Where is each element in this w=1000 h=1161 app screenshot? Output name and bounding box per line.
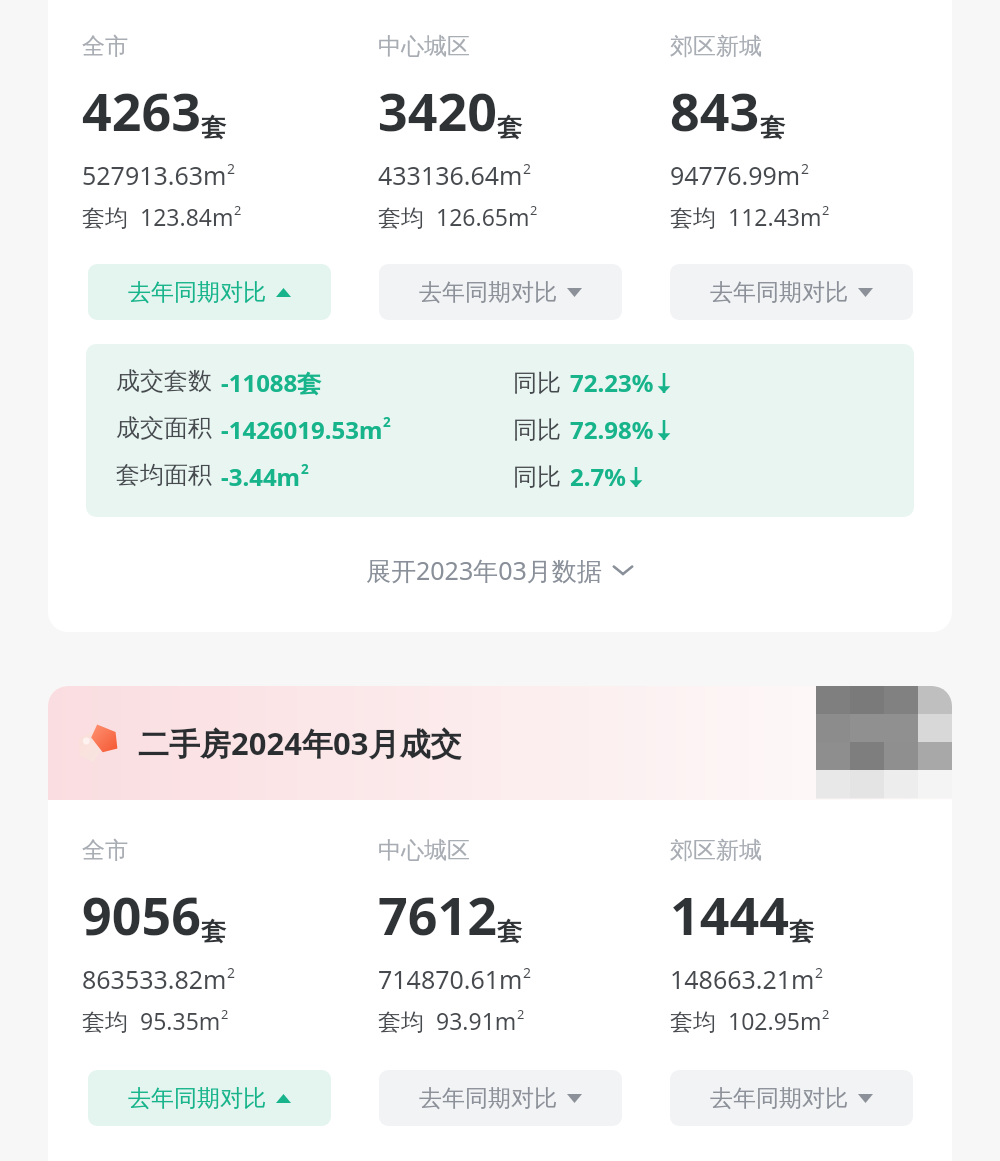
staticText: 去年同期对比 <box>128 278 266 307</box>
staticText: 2 <box>822 1005 830 1023</box>
staticText: 112.43m <box>728 201 822 232</box>
staticText: 123.84m <box>140 201 234 232</box>
button[interactable]: 去年同期对比 <box>88 1070 331 1126</box>
staticText: 843 <box>670 75 760 146</box>
staticText: 全市 <box>82 32 128 61</box>
staticText: 成交面积 <box>116 413 212 443</box>
staticText: 郊区新城 <box>670 32 762 61</box>
staticText: -11088套 <box>221 366 322 399</box>
staticText: 套 <box>760 112 785 143</box>
button[interactable]: 去年同期对比 <box>379 264 622 320</box>
staticText: 同比 <box>513 462 561 492</box>
staticText: 2 <box>530 201 538 219</box>
staticText: 2 <box>523 963 532 982</box>
staticText: 93.91m <box>436 1005 517 1036</box>
staticText: 102.95m <box>728 1005 822 1036</box>
staticText: 套 <box>201 916 226 947</box>
staticText: 94776.99m <box>670 158 801 192</box>
staticText: 2.7% <box>570 460 626 493</box>
staticText: 套均 <box>670 201 728 232</box>
staticText: 套均 <box>670 1005 728 1036</box>
staticText: 72.98% <box>570 413 654 446</box>
staticText: 863533.82m <box>82 962 227 996</box>
staticText: 72.23% <box>570 366 654 399</box>
staticText: 郊区新城 <box>670 836 762 865</box>
staticText: 去年同期对比 <box>710 278 848 307</box>
staticText: 套均 <box>82 1005 140 1036</box>
staticText: -3.44m <box>221 460 301 493</box>
staticText: 套 <box>789 916 814 947</box>
staticText: 去年同期对比 <box>419 1084 557 1113</box>
staticText: 95.35m <box>140 1005 221 1036</box>
staticText: 2 <box>383 413 391 431</box>
staticText: 套 <box>201 112 226 143</box>
staticText: 套 <box>497 112 522 143</box>
staticText: 2 <box>822 201 830 219</box>
staticText: 去年同期对比 <box>710 1084 848 1113</box>
staticText: 成交套数 <box>116 366 212 396</box>
staticText: 中心城区 <box>378 32 470 61</box>
staticText: 同比 <box>513 368 561 398</box>
button[interactable]: 展开2023年03月数据 <box>352 545 648 595</box>
staticText: 套均面积 <box>116 460 212 490</box>
staticText: 2 <box>234 201 242 219</box>
staticText: 去年同期对比 <box>419 278 557 307</box>
staticText: 714870.61m <box>378 962 523 996</box>
button[interactable]: 去年同期对比 <box>670 264 913 320</box>
staticText: 433136.64m <box>378 158 523 192</box>
button[interactable]: 去年同期对比 <box>670 1070 913 1126</box>
staticText: 套 <box>497 916 522 947</box>
staticText: 套均 <box>82 201 140 232</box>
staticText: 2 <box>815 963 824 982</box>
staticText: 2 <box>227 963 236 982</box>
button[interactable]: 去年同期对比 <box>379 1070 622 1126</box>
button[interactable]: 去年同期对比 <box>88 264 331 320</box>
staticText: 148663.21m <box>670 962 815 996</box>
staticText: 3420 <box>378 75 497 146</box>
staticText: 中心城区 <box>378 836 470 865</box>
staticText: 二手房2024年03月成交 <box>138 722 462 764</box>
staticText: 2 <box>301 460 309 478</box>
staticText: 2 <box>523 159 532 178</box>
staticText: 2 <box>227 159 236 178</box>
staticText: -1426019.53m <box>221 413 383 446</box>
staticText: 527913.63m <box>82 158 227 192</box>
staticText: 去年同期对比 <box>128 1084 266 1113</box>
staticText: 2 <box>221 1005 229 1023</box>
staticText: 套均 <box>378 1005 436 1036</box>
staticText: 126.65m <box>436 201 530 232</box>
staticText: 9056 <box>82 879 201 950</box>
staticText: 2 <box>517 1005 525 1023</box>
staticText: 1444 <box>670 879 789 950</box>
staticText: 同比 <box>513 415 561 445</box>
staticText: 7612 <box>378 879 497 950</box>
staticText: 展开2023年03月数据 <box>366 553 602 587</box>
staticText: 套均 <box>378 201 436 232</box>
staticText: 2 <box>801 159 810 178</box>
staticText: 全市 <box>82 836 128 865</box>
staticText: 4263 <box>82 75 201 146</box>
